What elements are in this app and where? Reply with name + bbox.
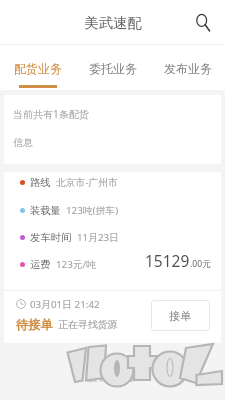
staticText: 美武速配 xyxy=(84,14,142,32)
staticText: 运费 xyxy=(30,258,51,271)
button[interactable]: 路线 xyxy=(4,172,221,343)
staticText: 装载量 xyxy=(30,204,61,217)
staticText: 北京市-广州市 xyxy=(56,176,118,189)
staticText: 委托业务 xyxy=(89,61,137,76)
button[interactable]: 接单 xyxy=(151,300,210,331)
staticText: 发布业务 xyxy=(164,61,212,76)
staticText: 配货业务 xyxy=(14,61,62,76)
button[interactable]: 发布业务 xyxy=(150,45,225,90)
staticText: .00元 xyxy=(190,258,211,270)
staticText: 发车时间 xyxy=(30,231,72,244)
staticText: 15129 xyxy=(145,250,190,271)
staticText: 11月23日 xyxy=(77,231,120,244)
staticText: 接单 xyxy=(169,309,192,323)
button[interactable]: Search xyxy=(190,10,214,34)
staticText: 123元/吨 xyxy=(56,258,97,271)
button[interactable]: 配货业务 xyxy=(0,45,75,90)
staticText: 当前共有1条配货信息 xyxy=(13,107,93,149)
staticText: 正在寻找货源 xyxy=(58,318,118,330)
staticText: 123吨(拼车) xyxy=(66,204,119,217)
staticText: 03月01日 21:42 xyxy=(30,298,100,310)
button[interactable]: 委托业务 xyxy=(75,45,150,90)
staticText: 没有更多了 xyxy=(0,371,225,384)
staticText: 待接单 xyxy=(16,317,53,331)
staticText: 路线 xyxy=(30,176,51,189)
